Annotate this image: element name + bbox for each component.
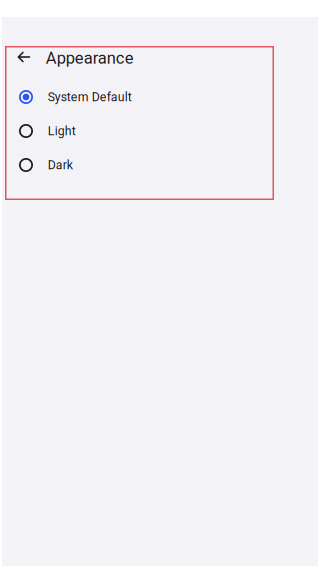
staticText: Dark [48,158,73,172]
button[interactable]: Dark [5,148,274,182]
staticText: System Default [48,90,132,104]
staticText: Appearance [46,48,134,68]
button[interactable]: Light [5,114,274,148]
staticText: Light [48,124,76,138]
button[interactable]: System Default [5,80,274,114]
button[interactable]: Back [5,48,46,67]
